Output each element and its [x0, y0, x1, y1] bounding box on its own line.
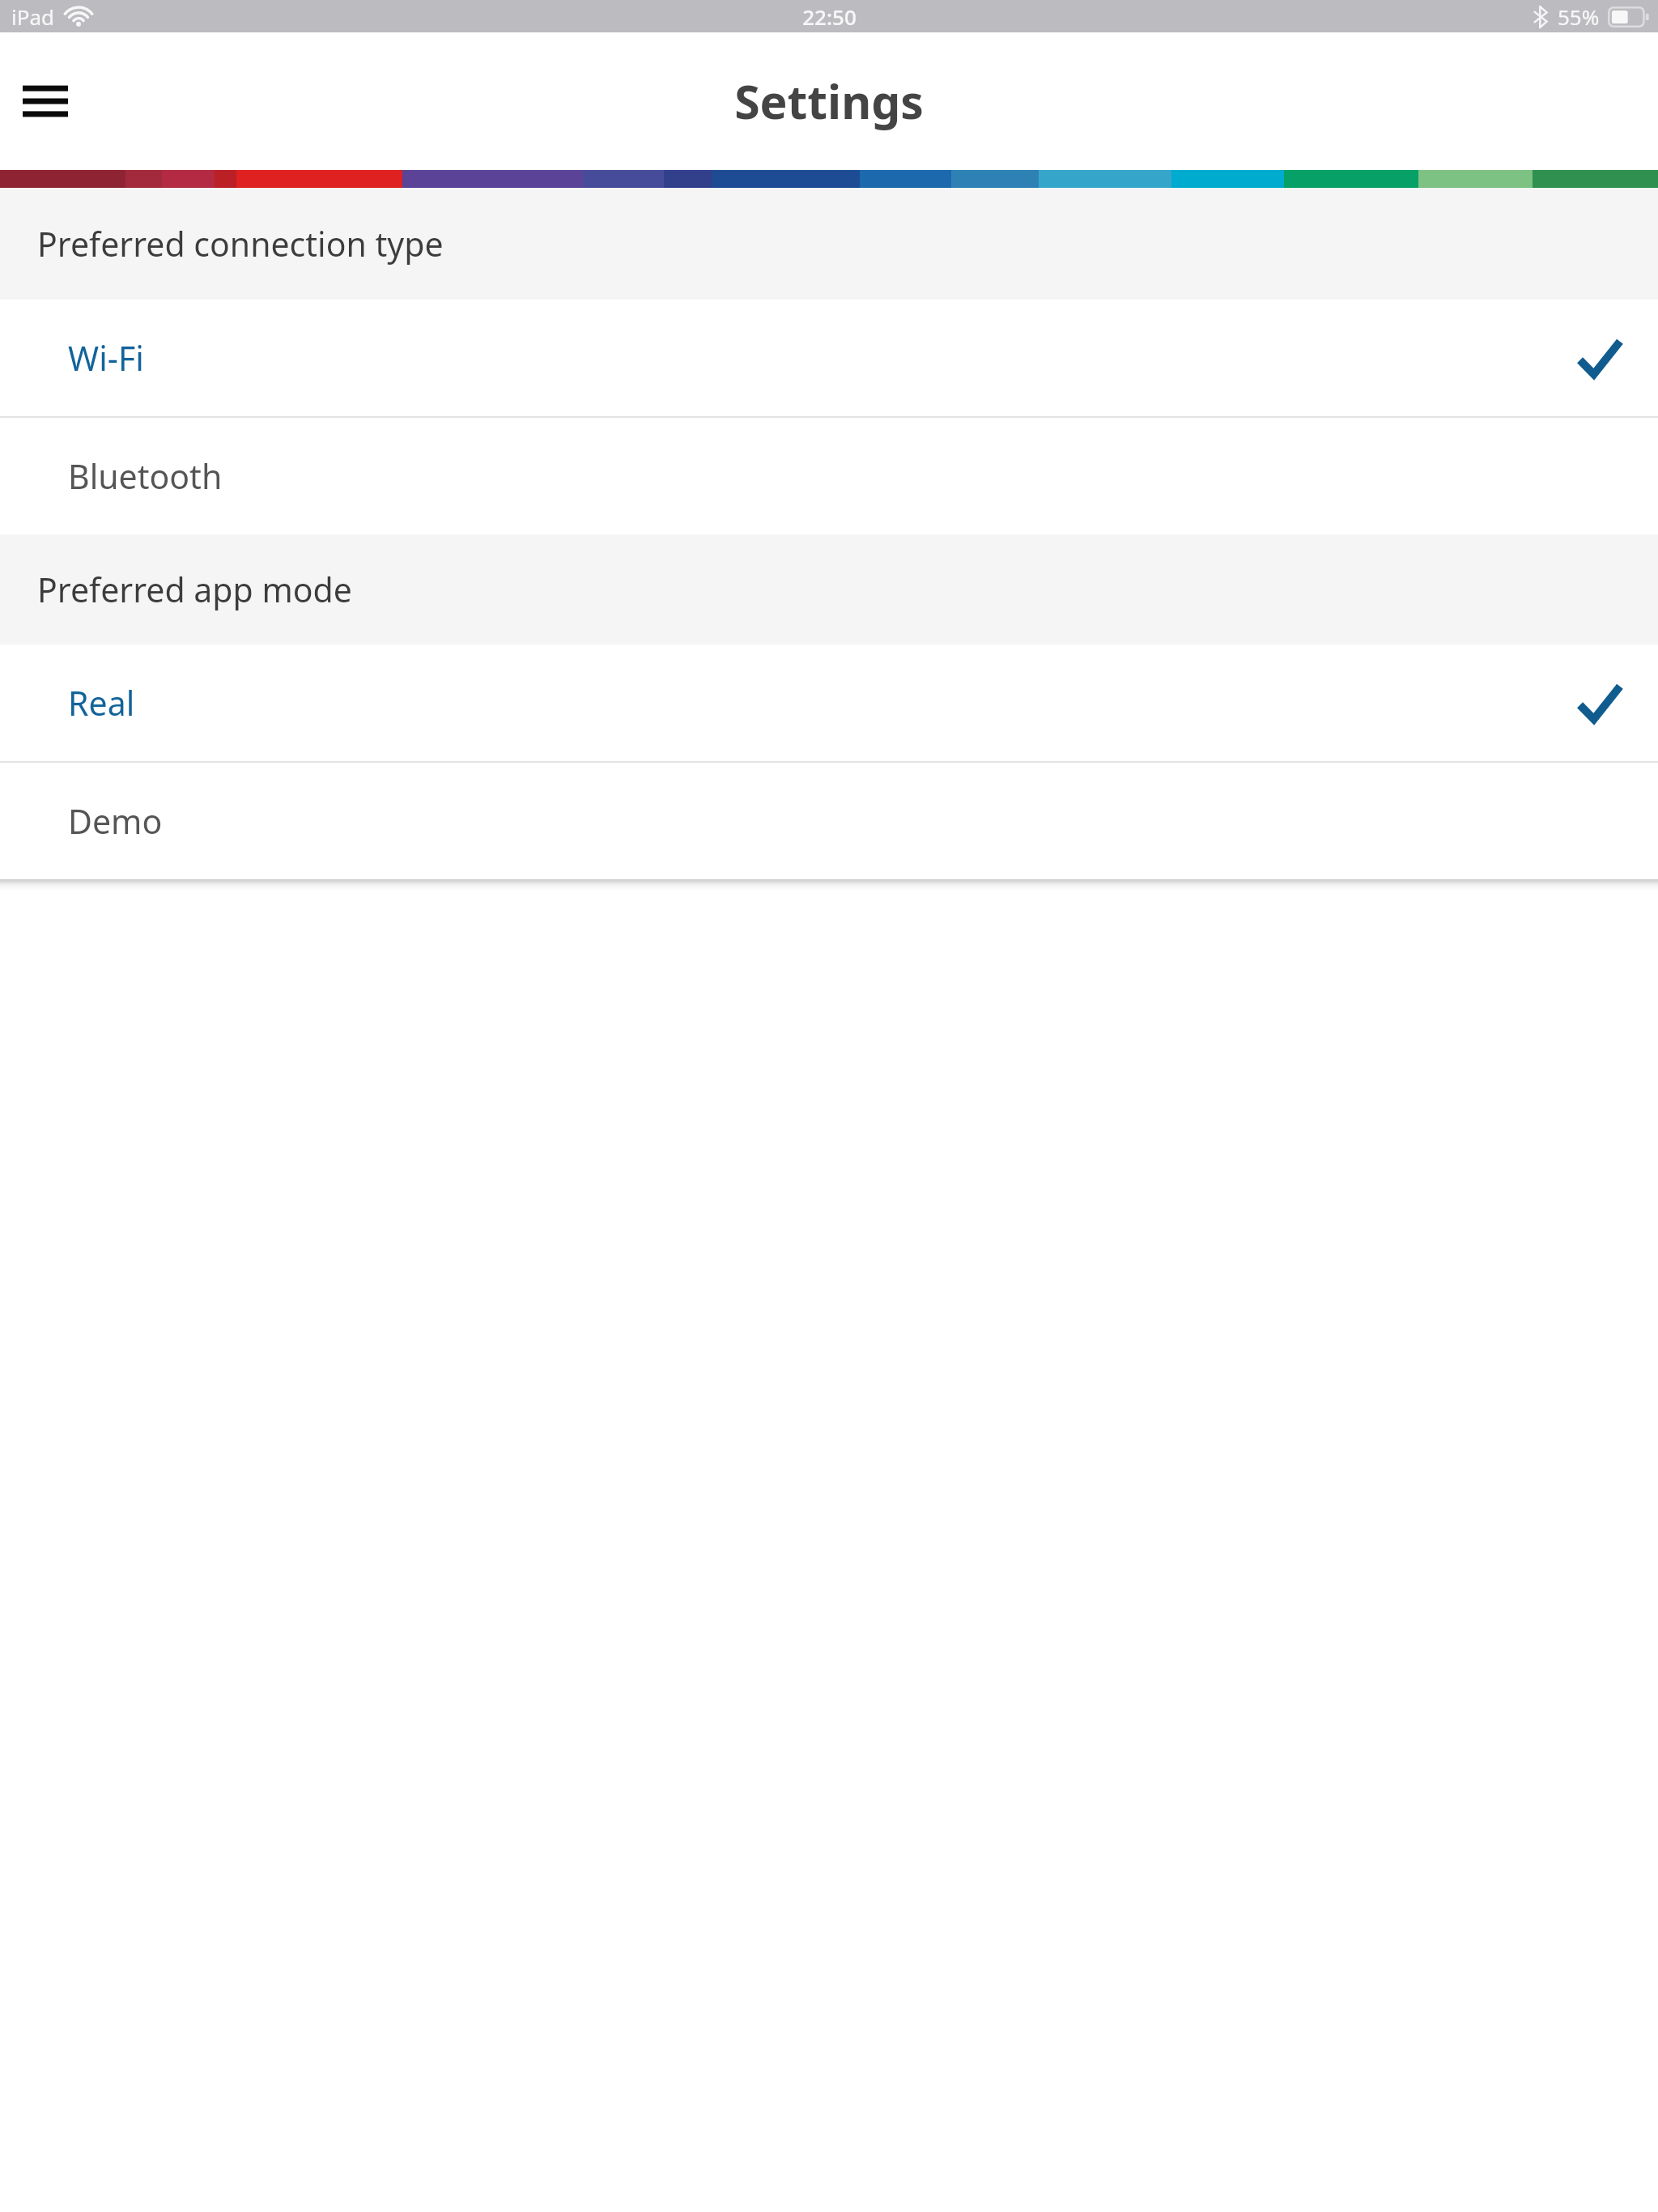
staticText: Wi-Fi [68, 335, 144, 381]
staticText: Preferred app mode [37, 567, 352, 612]
staticText: iPad [11, 2, 55, 31]
button[interactable]: Wi-Fi [0, 300, 1658, 416]
staticText: 22:50 [802, 2, 857, 31]
button[interactable]: Open navigation menu [5, 62, 86, 140]
staticText: Real [68, 680, 135, 725]
button[interactable]: Demo [0, 763, 1658, 879]
staticText: Preferred connection type [37, 221, 444, 266]
staticText: Settings [734, 70, 924, 133]
staticText: 55% [1558, 2, 1600, 31]
staticText: Bluetooth [68, 453, 223, 499]
staticText: Demo [68, 798, 163, 844]
button[interactable]: Real [0, 644, 1658, 761]
button[interactable]: Bluetooth [0, 418, 1658, 534]
